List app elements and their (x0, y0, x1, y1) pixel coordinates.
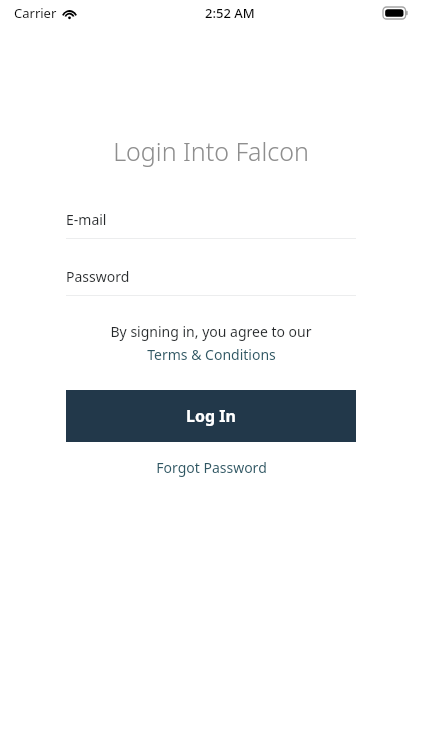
staticText: Terms & Conditions (147, 345, 276, 364)
staticText: Login Into Falcon (0, 134, 422, 168)
staticText: Forgot Password (156, 458, 267, 477)
other: Battery full (383, 7, 409, 19)
staticText: Log In (186, 405, 236, 427)
staticText: Password (66, 267, 130, 286)
button[interactable]: Password (66, 267, 356, 296)
staticText: 2:52 AM (205, 4, 255, 22)
staticText: By signing in, you agree to our (0, 322, 422, 341)
staticText: Carrier (14, 4, 57, 22)
other: Wi-Fi signal (62, 8, 77, 19)
button[interactable]: Terms & Conditions (0, 345, 422, 364)
button[interactable]: E-mail (66, 210, 356, 239)
button[interactable]: Log In (66, 390, 356, 442)
button[interactable]: Forgot Password (0, 458, 422, 477)
staticText: E-mail (66, 210, 107, 229)
